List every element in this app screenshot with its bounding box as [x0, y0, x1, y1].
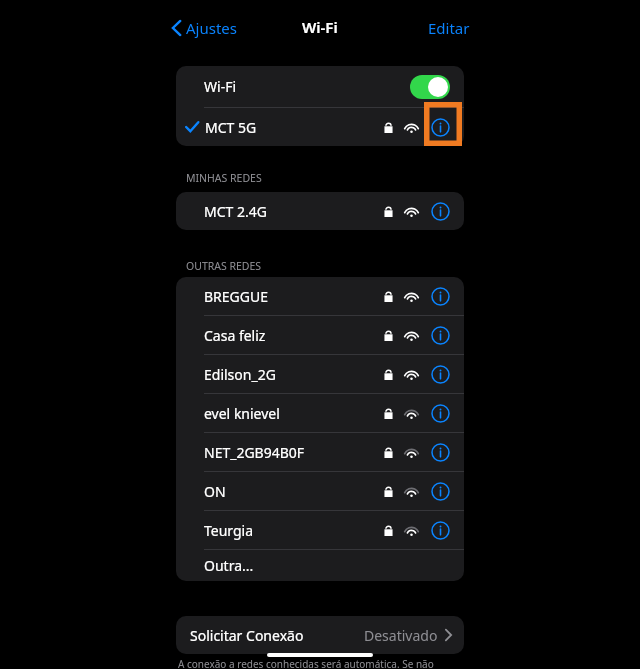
- staticText: Ajustes: [186, 18, 237, 38]
- button[interactable]: Casa feliz: [176, 316, 464, 354]
- staticText: Edilson_2G: [204, 365, 276, 384]
- staticText: Wi-Fi: [302, 17, 338, 37]
- button[interactable]: BREGGUE: [176, 277, 464, 315]
- button[interactable]: evel knievel: [176, 394, 464, 432]
- button[interactable]: Network info: [430, 201, 450, 221]
- button[interactable]: ON: [176, 472, 464, 510]
- staticText: MCT 2.4G: [204, 202, 267, 221]
- staticText: Teurgia: [204, 521, 254, 540]
- staticText: Solicitar Conexão: [190, 626, 304, 645]
- button[interactable]: Network info: [430, 403, 450, 423]
- button[interactable]: Ajustes: [168, 14, 241, 42]
- button[interactable]: Network info: [430, 364, 450, 384]
- button[interactable]: MCT 5G: [176, 108, 464, 146]
- button[interactable]: Network info: [430, 442, 450, 462]
- staticText: NET_2GB94B0F: [204, 443, 305, 462]
- button[interactable]: Solicitar Conexão: [176, 616, 464, 654]
- staticText: ON: [204, 482, 226, 501]
- staticText: Desativado: [364, 626, 438, 645]
- button[interactable]: Network info: [430, 117, 450, 137]
- staticText: Editar: [428, 18, 470, 38]
- button[interactable]: Network info: [430, 286, 450, 306]
- button[interactable]: Network info: [430, 325, 450, 345]
- button[interactable]: Wi-Fi on: [410, 75, 450, 99]
- staticText: BREGGUE: [204, 287, 268, 306]
- staticText: A conexão a redes conhecidas será automá…: [178, 657, 434, 669]
- button[interactable]: Edilson_2G: [176, 355, 464, 393]
- button[interactable]: Editar: [424, 14, 474, 42]
- staticText: Outra...: [204, 556, 254, 575]
- button[interactable]: Teurgia: [176, 511, 464, 549]
- button[interactable]: Outra...: [176, 550, 464, 581]
- staticText: MCT 5G: [205, 118, 257, 137]
- staticText: evel knievel: [204, 404, 280, 423]
- staticText: Wi-Fi: [204, 77, 237, 96]
- button[interactable]: MCT 2.4G: [176, 192, 464, 230]
- staticText: MINHAS REDES: [186, 171, 262, 185]
- button[interactable]: Network info: [430, 520, 450, 540]
- button[interactable]: Network info: [430, 481, 450, 501]
- button[interactable]: NET_2GB94B0F: [176, 433, 464, 471]
- staticText: OUTRAS REDES: [186, 259, 262, 273]
- button[interactable]: Wi-Fi: [176, 66, 464, 107]
- staticText: Casa feliz: [204, 326, 266, 345]
